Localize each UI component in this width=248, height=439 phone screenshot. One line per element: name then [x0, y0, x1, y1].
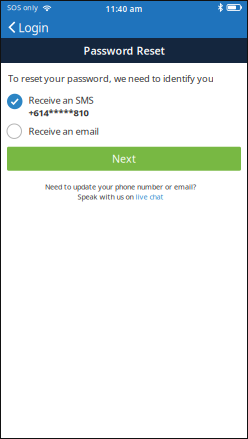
button[interactable]: Receive an email	[0, 124, 248, 139]
button[interactable]: Receive an SMS	[0, 94, 248, 119]
staticText: Login	[18, 19, 48, 36]
staticText: 11:40 am	[105, 4, 142, 14]
staticText: live chat	[135, 192, 163, 201]
staticText: Receive an email	[28, 125, 98, 138]
staticText: SOS only	[7, 2, 38, 12]
staticText: Receive an SMS	[28, 94, 93, 107]
button[interactable]: Login	[0, 18, 54, 38]
staticText: Speak with us on	[77, 192, 135, 201]
staticText: To reset your password, we need to ident…	[8, 72, 214, 85]
staticText: Password Reset	[83, 43, 164, 58]
button[interactable]: Next	[7, 147, 241, 171]
staticText: +614*****810	[28, 106, 88, 119]
button[interactable]: live chat	[135, 192, 163, 201]
staticText: Next	[112, 151, 136, 166]
staticText: Need to update your phone number or emai…	[45, 182, 196, 192]
